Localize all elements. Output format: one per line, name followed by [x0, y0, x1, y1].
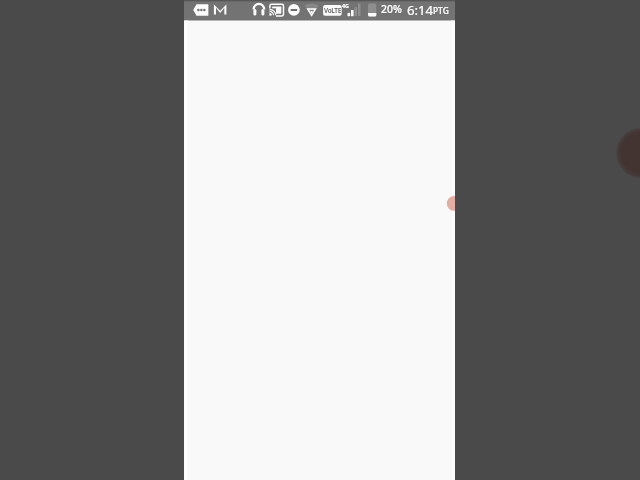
- button[interactable]: Gmail: [213, 4, 227, 17]
- button[interactable]: Headphones connected: [253, 4, 265, 17]
- staticText: VoLTE: [324, 6, 341, 15]
- staticText: 6:14: [407, 1, 434, 19]
- button[interactable]: Notifications: [193, 4, 209, 17]
- staticText: 20%: [381, 2, 402, 16]
- staticText: PTG: [433, 5, 449, 16]
- button[interactable]: Do not disturb: [288, 4, 301, 17]
- button[interactable]: Clock 6:14 PTG: [406, 3, 449, 17]
- button[interactable]: [184, 0, 455, 480]
- button[interactable]: Wi-Fi: [305, 4, 319, 17]
- staticText: 4G: [342, 2, 349, 9]
- button[interactable]: Mobile signal: [323, 4, 362, 17]
- button[interactable]: Screen casting: [269, 4, 284, 17]
- button[interactable]: Battery 20 percent: [367, 3, 400, 17]
